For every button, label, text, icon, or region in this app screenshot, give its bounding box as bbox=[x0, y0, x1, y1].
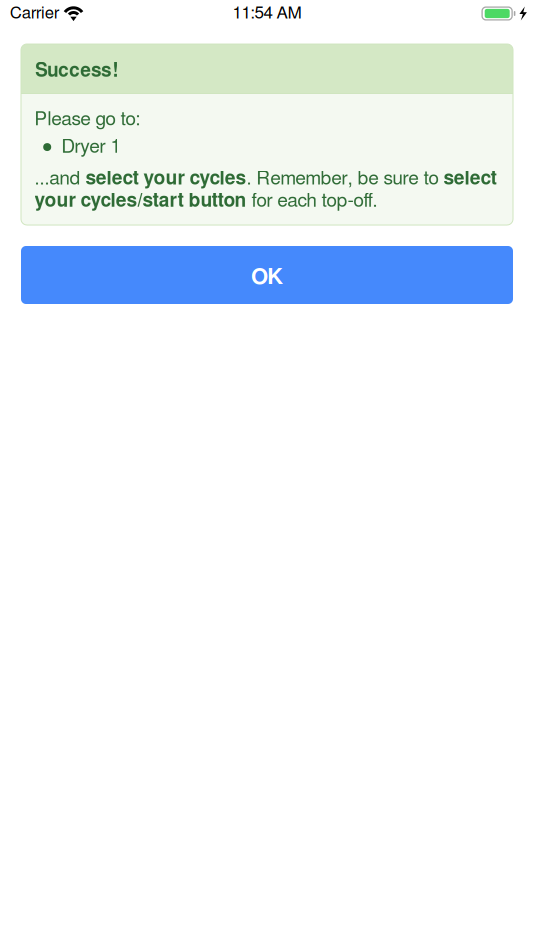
button[interactable]: OK bbox=[21, 246, 513, 304]
staticText: 11:54 AM bbox=[232, 5, 301, 22]
staticText: OK bbox=[251, 266, 283, 288]
staticText: Success! bbox=[35, 61, 118, 80]
staticText: Please go to: bbox=[34, 110, 140, 129]
staticText: Dryer 1 bbox=[61, 137, 121, 157]
staticText: Carrier bbox=[10, 5, 59, 22]
staticText: ...and select your cycles. Remember, be … bbox=[34, 170, 496, 210]
